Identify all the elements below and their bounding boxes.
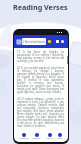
staticText: 13 Ir kai Jėzus tai išgirdo, Jis pasitra… (17, 50, 64, 63)
staticText: Paieska (46, 137, 53, 140)
button[interactable]: Grid menu (16, 39, 21, 44)
staticText: 33 O atėjus vakarui, priėjo prie Jo moki… (17, 97, 64, 128)
button[interactable]: Ankstesnis (19, 133, 29, 140)
button[interactable]: Settings (56, 40, 59, 43)
staticText: Reading Verses (13, 2, 68, 12)
button[interactable]: Sekantis (33, 133, 41, 140)
button[interactable]: Paieska (46, 133, 53, 140)
button[interactable]: Bookmark (48, 40, 51, 43)
staticText: 2 Korintiečiams (22, 40, 46, 44)
button[interactable]: Meniu (57, 133, 63, 140)
button[interactable]: More options (61, 40, 64, 43)
staticText: Meniu (57, 137, 63, 140)
button[interactable]: 2 Korintiečiams (22, 38, 46, 45)
staticText: 22 Ir jos nusekė paskui Jį pėsčiomis iš … (17, 66, 64, 94)
staticText: Ankstesnis (19, 137, 29, 140)
staticText: Sekantis (33, 137, 41, 140)
